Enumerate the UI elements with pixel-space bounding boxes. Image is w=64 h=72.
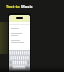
staticText: Text to xyxy=(6,4,21,9)
button[interactable]: Text to xyxy=(6,4,33,9)
staticText: Music xyxy=(21,4,33,9)
button[interactable]: Keyboard xyxy=(9,50,30,72)
